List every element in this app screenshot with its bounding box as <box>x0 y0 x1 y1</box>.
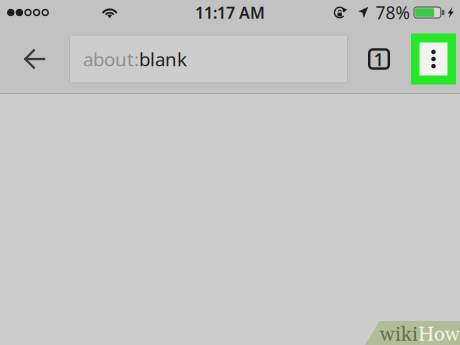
staticText: 11:17 AM <box>195 2 265 23</box>
button[interactable]: More options <box>411 33 456 84</box>
staticText: wiki <box>380 322 418 345</box>
staticText: 1 <box>373 47 384 71</box>
staticText: blank <box>139 47 187 71</box>
button[interactable]: Tabs <box>368 33 390 85</box>
staticText: 78% <box>375 1 409 24</box>
staticText: about: <box>83 47 139 71</box>
button[interactable]: Back <box>0 33 69 85</box>
button[interactable]: about: <box>69 34 348 83</box>
staticText: How <box>418 322 460 345</box>
